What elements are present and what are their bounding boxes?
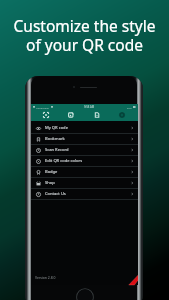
button[interactable]: My QR code	[31, 123, 138, 133]
button[interactable]: Scan Record	[31, 145, 138, 155]
button[interactable]: Bookmark	[31, 134, 138, 144]
staticText: Notification	[36, 106, 50, 109]
button[interactable]: Document	[92, 110, 102, 120]
staticText: 9:58 AM	[84, 105, 95, 109]
button[interactable]: Settings	[117, 110, 127, 120]
button[interactable]: Edit QR code colors	[31, 156, 138, 166]
button[interactable]: Gallery	[66, 110, 76, 120]
button[interactable]: Scan QR code	[41, 110, 51, 120]
button[interactable]: Contact Us	[31, 189, 138, 199]
staticText: Edit QR code colors	[45, 158, 83, 164]
staticText: Contact Us	[45, 191, 66, 197]
staticText: Bookmark	[45, 136, 65, 142]
staticText: Version 2.8.0	[35, 275, 56, 280]
button[interactable]: Promotion banner	[122, 271, 138, 285]
staticText: Scan Record	[45, 147, 69, 153]
staticText: 84%	[127, 106, 132, 109]
staticText: Customize the style of your QR code	[0, 15, 169, 56]
button[interactable]: Shop	[31, 178, 138, 188]
staticText: Shop	[45, 180, 55, 186]
staticText: My QR code	[45, 125, 68, 131]
staticText: Badge	[45, 169, 58, 175]
button[interactable]: Badge	[31, 167, 138, 177]
